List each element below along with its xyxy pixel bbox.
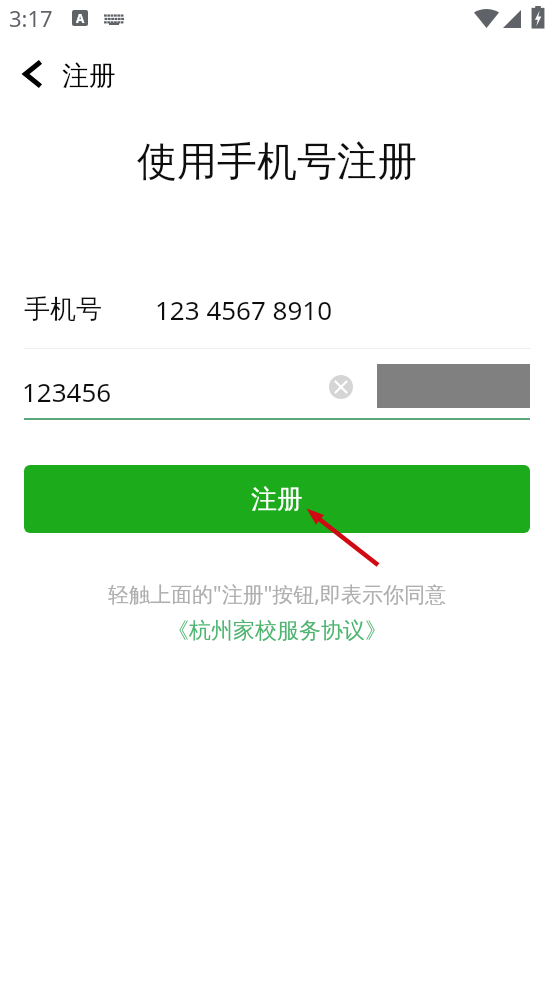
staticText: 注册 xyxy=(62,59,116,93)
staticText: 轻触上面的"注册"按钮,即表示你同意 xyxy=(108,580,446,609)
button[interactable]: Clear text xyxy=(325,371,357,403)
button[interactable]: Back xyxy=(9,51,55,97)
staticText: 使用手机号注册 xyxy=(137,136,417,186)
staticText: 3:17 xyxy=(9,3,53,33)
staticText: 注册 xyxy=(251,483,303,516)
staticText: 手机号 xyxy=(24,293,102,326)
button[interactable]: 注册 xyxy=(24,465,530,533)
staticText: A xyxy=(76,10,85,26)
staticText: 123456 xyxy=(22,374,112,409)
button[interactable]: 《杭州家校服务协议》 xyxy=(167,617,387,645)
staticText: 123 4567 8910 xyxy=(155,292,333,327)
